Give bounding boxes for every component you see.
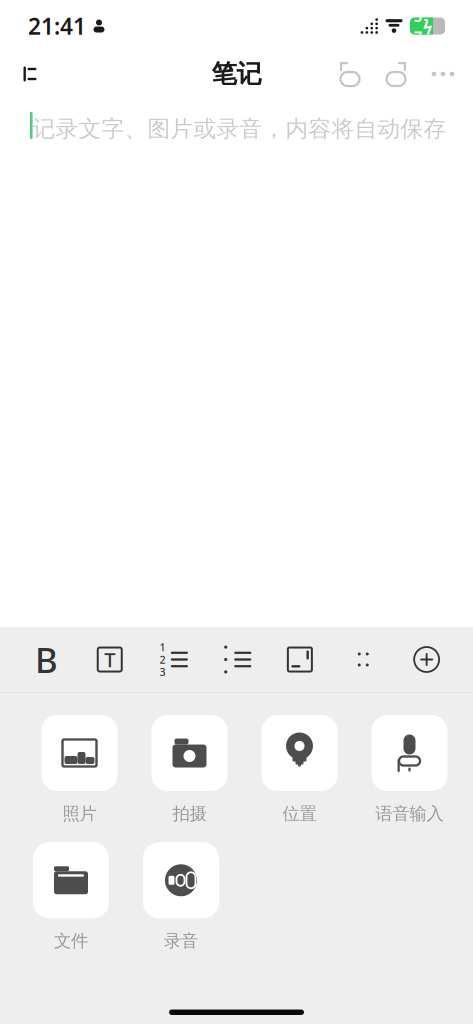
staticText: 记录文字、图片或录音，内容将自动保存: [33, 115, 447, 143]
button[interactable]: 待办事项: [275, 633, 325, 685]
button[interactable]: 加粗: [21, 633, 71, 685]
staticText: 21:41: [28, 11, 86, 41]
button[interactable]: 拍摄: [134, 715, 244, 824]
button[interactable]: 重做: [373, 52, 419, 96]
button[interactable]: 文字样式: [85, 633, 135, 685]
button[interactable]: 撤销: [327, 52, 373, 96]
button[interactable]: 分隔线: [338, 633, 388, 685]
staticText: 57: [414, 6, 422, 45]
staticText: 拍摄: [172, 803, 206, 824]
button[interactable]: 文件: [16, 842, 126, 952]
button[interactable]: 编号列表: [148, 633, 198, 685]
staticText: 位置: [282, 803, 316, 824]
staticText: 照片: [62, 803, 96, 824]
staticText: 3: [159, 665, 165, 679]
staticText: 文件: [54, 930, 88, 952]
button[interactable]: 返回: [6, 52, 54, 96]
button[interactable]: 更多: [419, 52, 467, 96]
staticText: 笔记: [211, 58, 261, 89]
staticText: 录音: [164, 930, 198, 952]
button[interactable]: 语音输入: [354, 715, 464, 824]
staticText: B: [35, 636, 58, 682]
staticText: 语音输入: [375, 803, 443, 824]
staticText: T: [104, 646, 115, 673]
button[interactable]: 位置: [244, 715, 354, 824]
button[interactable]: 项目符号列表: [211, 633, 261, 685]
staticText: 1: [159, 640, 165, 654]
staticText: 2: [159, 652, 165, 667]
button[interactable]: 照片: [24, 715, 134, 824]
button[interactable]: 插入更多: [402, 633, 452, 685]
staticText: ϟ: [423, 14, 433, 37]
button[interactable]: 录音: [126, 842, 236, 952]
